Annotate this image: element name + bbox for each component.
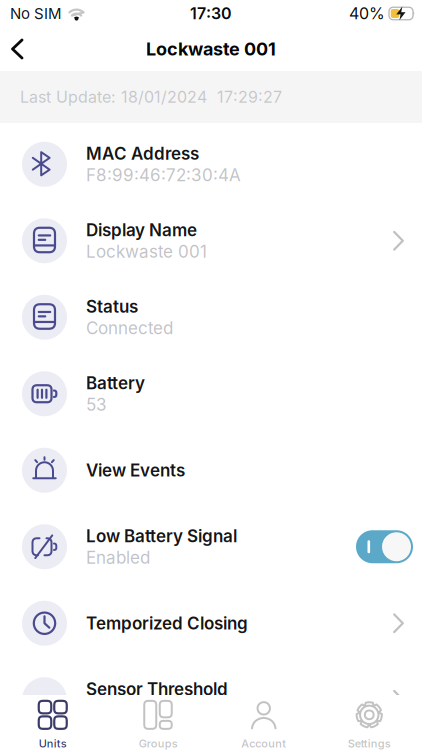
staticText: Status: [86, 296, 138, 317]
staticText: Settings: [348, 737, 391, 750]
staticText: View Events: [86, 460, 185, 481]
staticText: 53: [86, 394, 107, 415]
button[interactable]: Display Name: [0, 202, 422, 279]
staticText: 17:30: [190, 4, 232, 23]
staticText: Lockwaste 001: [86, 241, 207, 262]
staticText: Lockwaste 001: [146, 38, 276, 60]
staticText: No SIM: [10, 4, 62, 22]
staticText: Sensor Threshold: [86, 679, 228, 699]
staticText: Last Update: 18/01/2024 17:29:27: [20, 87, 282, 107]
button[interactable]: Back: [0, 30, 38, 67]
staticText: Connected: [86, 318, 173, 338]
staticText: Battery: [86, 373, 145, 393]
staticText: Enabled: [86, 547, 150, 568]
button[interactable]: Units: [0, 695, 105, 750]
staticText: Temporized Closing: [86, 613, 248, 634]
staticText: Groups: [139, 737, 178, 750]
button[interactable]: Settings: [316, 695, 422, 750]
button[interactable]: Groups: [105, 695, 211, 750]
staticText: Display Name: [86, 220, 197, 240]
button[interactable]: Temporized Closing: [0, 585, 422, 661]
button[interactable]: Low Battery Signal: [0, 508, 422, 585]
staticText: 40%: [349, 4, 385, 23]
staticText: Units: [39, 737, 67, 750]
staticText: Low Battery Signal: [86, 526, 237, 546]
staticText: F8:99:46:72:30:4A: [86, 165, 241, 185]
staticText: Account: [241, 737, 286, 750]
staticText: MAC Address: [86, 143, 199, 164]
button[interactable]: Sensor Threshold: [0, 661, 422, 738]
button[interactable]: Account: [211, 695, 316, 750]
button[interactable]: View Events: [0, 432, 422, 508]
